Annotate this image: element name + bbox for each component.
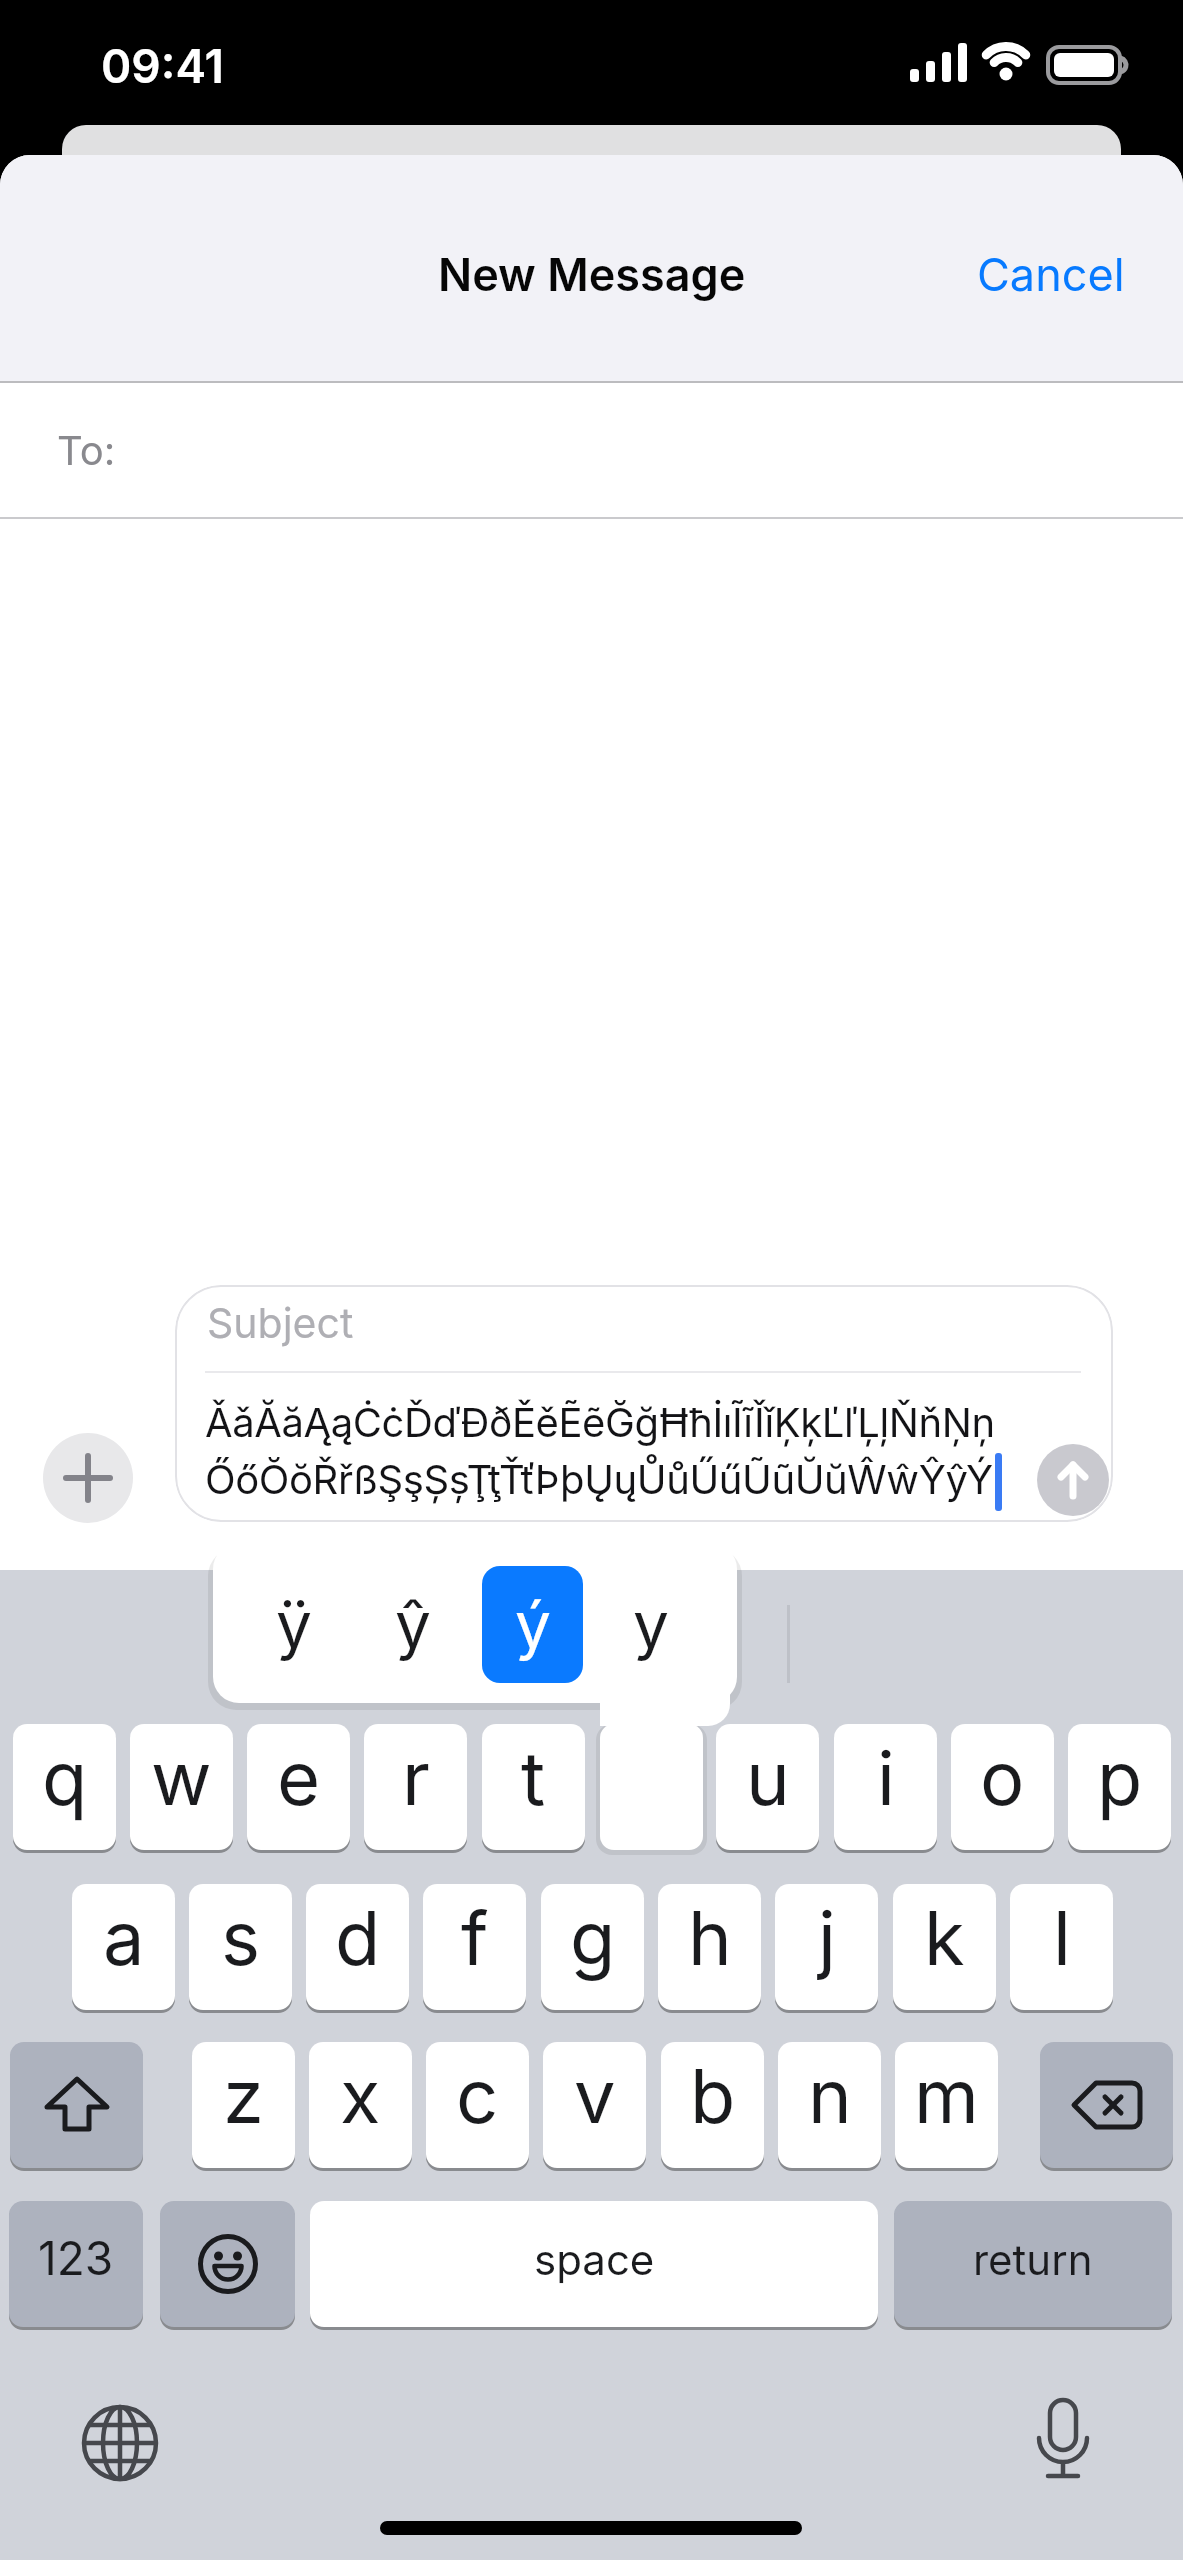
staticText: d — [335, 1893, 381, 1983]
button[interactable]: d — [306, 1884, 409, 2010]
staticText: ŷ — [395, 1586, 431, 1663]
staticText: space — [534, 2234, 655, 2285]
staticText: To: — [57, 426, 116, 474]
button[interactable]: ÿ — [244, 1565, 344, 1683]
staticText: Subject — [207, 1298, 354, 1348]
button[interactable]: w — [130, 1724, 233, 1850]
staticText: 09:41 — [101, 38, 225, 94]
button[interactable] — [43, 1433, 133, 1523]
button[interactable] — [1040, 2042, 1173, 2168]
staticText: ŐőŎŏŘřßŞşȘșŢţŤťÞþŲųŮůŰűŨũŬŭŴŵŶŷÝ — [205, 1455, 993, 1503]
staticText: ǍǎĂăĄąĊċĎďĐðĚěẼẽĞğĦħİıĨĩǏǐĶķĽľĻļŇňŅņ — [205, 1398, 995, 1446]
staticText: w — [151, 1733, 212, 1823]
button[interactable]: a — [72, 1884, 175, 2010]
button[interactable]: c — [426, 2042, 529, 2168]
staticText: y — [633, 1586, 669, 1663]
button[interactable] — [75, 2398, 165, 2488]
staticText: s — [221, 1893, 261, 1983]
staticText: c — [456, 2051, 499, 2141]
staticText: h — [688, 1893, 732, 1983]
button[interactable]: space — [310, 2201, 878, 2327]
button[interactable]: e — [247, 1724, 350, 1850]
button[interactable]: l — [1010, 1884, 1113, 2010]
staticText: x — [340, 2051, 381, 2141]
staticText: l — [1053, 1893, 1071, 1983]
staticText: 123 — [38, 2230, 114, 2286]
staticText: New Message — [438, 247, 746, 301]
button[interactable]: g — [541, 1884, 644, 2010]
button[interactable]: Cancel — [977, 247, 1125, 301]
staticText: i — [877, 1733, 895, 1823]
button[interactable] — [1018, 2396, 1108, 2486]
staticText: ý — [515, 1586, 551, 1663]
staticText: g — [570, 1893, 616, 1983]
button[interactable] — [10, 2042, 143, 2168]
staticText: return — [973, 2234, 1093, 2285]
button[interactable]: To: — [0, 383, 1183, 517]
staticText: a — [103, 1893, 145, 1983]
button[interactable]: i — [834, 1724, 937, 1850]
button[interactable] — [1037, 1444, 1109, 1516]
button[interactable]: ý — [482, 1566, 583, 1683]
staticText: e — [277, 1733, 321, 1823]
staticText: k — [924, 1893, 965, 1983]
staticText: v — [574, 2051, 616, 2141]
button[interactable]: z — [192, 2042, 295, 2168]
button[interactable] — [160, 2201, 295, 2327]
staticText: o — [980, 1733, 1025, 1823]
staticText: z — [223, 2051, 264, 2141]
button[interactable]: b — [661, 2042, 764, 2168]
button[interactable]: return — [894, 2201, 1172, 2327]
staticText: p — [1097, 1733, 1143, 1823]
button[interactable]: y — [601, 1565, 701, 1683]
button[interactable]: k — [893, 1884, 996, 2010]
button[interactable]: f — [423, 1884, 526, 2010]
staticText: m — [914, 2051, 979, 2141]
staticText: r — [402, 1733, 430, 1823]
button[interactable]: r — [364, 1724, 467, 1850]
button[interactable]: t — [482, 1724, 585, 1850]
staticText: f — [461, 1893, 489, 1983]
button[interactable]: v — [543, 2042, 646, 2168]
staticText: b — [690, 2051, 736, 2141]
staticText: j — [818, 1893, 836, 1983]
staticText: u — [746, 1733, 790, 1823]
button[interactable]: h — [658, 1884, 761, 2010]
button[interactable]: m — [895, 2042, 998, 2168]
button[interactable]: q — [13, 1724, 116, 1850]
staticText: ÿ — [276, 1586, 312, 1663]
button[interactable]: j — [775, 1884, 878, 2010]
staticText: t — [521, 1733, 546, 1823]
staticText: Cancel — [977, 247, 1125, 301]
button[interactable]: n — [778, 2042, 881, 2168]
button[interactable]: 123 — [9, 2201, 143, 2327]
button[interactable]: p — [1068, 1724, 1171, 1850]
button[interactable]: s — [189, 1884, 292, 2010]
button[interactable]: x — [309, 2042, 412, 2168]
button[interactable]: o — [951, 1724, 1054, 1850]
staticText: n — [808, 2051, 852, 2141]
button[interactable]: u — [716, 1724, 819, 1850]
button[interactable]: ŷ — [363, 1565, 463, 1683]
staticText: q — [42, 1733, 88, 1823]
